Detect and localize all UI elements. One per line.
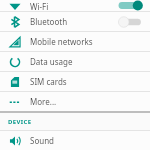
staticText: Sound	[30, 135, 55, 146]
button[interactable]: More...	[0, 92, 150, 111]
button[interactable]: SIM cards	[0, 72, 150, 91]
staticText: More...	[30, 96, 57, 107]
button[interactable]: Bluetooth off	[117, 16, 143, 28]
button[interactable]: Data usage	[0, 52, 150, 71]
staticText: DEVICE	[8, 118, 32, 126]
button[interactable]: Mobile networks	[0, 32, 150, 51]
button[interactable]: Sound	[0, 131, 150, 150]
staticText: SIM cards	[30, 76, 67, 87]
staticText: Data usage	[30, 56, 73, 67]
staticText: Wi-Fi	[30, 1, 49, 12]
staticText: Bluetooth	[30, 16, 68, 27]
button[interactable]: Wi-Fi	[0, 0, 150, 11]
staticText: Mobile networks	[30, 36, 93, 47]
button[interactable]: Bluetooth	[0, 12, 150, 31]
button[interactable]: Wi-Fi on	[117, 0, 143, 11]
